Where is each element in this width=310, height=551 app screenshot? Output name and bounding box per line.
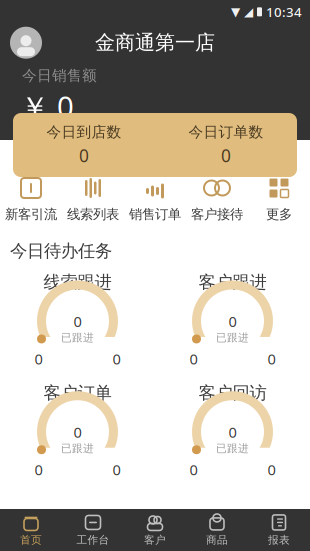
staticText: 今日待办任务: [10, 240, 112, 262]
staticText: 销售订单: [129, 206, 181, 222]
staticText: ￥ 0: [20, 87, 74, 126]
button[interactable]: 新客引流: [0, 172, 62, 226]
staticText: 更多: [266, 206, 292, 222]
staticText: 商品: [206, 533, 228, 546]
button[interactable]: 线索列表: [62, 172, 124, 226]
staticText: 客户接待: [191, 206, 243, 222]
staticText: 新客引流: [5, 206, 57, 222]
staticText: 已跟进: [216, 331, 249, 344]
staticText: 金商通第一店: [95, 30, 215, 55]
button[interactable]: 客户: [124, 509, 186, 550]
staticText: 线索列表: [67, 206, 119, 222]
staticText: 0: [34, 349, 42, 368]
staticText: 首页: [20, 533, 42, 546]
staticText: 0: [221, 144, 231, 167]
staticText: 客户回访: [198, 382, 266, 404]
staticText: 0: [267, 349, 275, 368]
staticText: 0: [73, 422, 81, 442]
button[interactable]: 客户接待: [186, 172, 248, 226]
staticText: 0: [79, 144, 89, 167]
staticText: 0: [189, 460, 197, 479]
staticText: 0: [112, 349, 120, 368]
staticText: 已跟进: [61, 442, 94, 455]
button[interactable]: 商品: [186, 509, 248, 550]
button[interactable]: 客户跟进: [184, 272, 280, 368]
staticText: 0: [228, 422, 236, 442]
button[interactable]: 首页: [0, 509, 62, 550]
staticText: 今日订单数: [188, 123, 263, 141]
button[interactable]: 工作台: [62, 509, 124, 550]
button[interactable]: 客户回访: [184, 382, 280, 479]
button[interactable]: 更多: [248, 172, 310, 226]
staticText: 客户跟进: [198, 272, 266, 293]
staticText: 报表: [268, 533, 290, 546]
staticText: 客户订单: [43, 382, 111, 404]
staticText: 客户: [144, 533, 166, 546]
staticText: 工作台: [76, 533, 109, 546]
staticText: 线索跟进: [43, 272, 111, 293]
button[interactable]: 客户订单: [29, 382, 125, 479]
staticText: 0: [189, 349, 197, 368]
button[interactable]: 报表: [248, 509, 310, 550]
staticText: 0: [267, 460, 275, 479]
staticText: 0: [228, 312, 236, 331]
staticText: 0: [34, 460, 42, 479]
staticText: 今日销售额: [22, 67, 97, 85]
staticText: 已跟进: [61, 331, 94, 344]
staticText: 0: [112, 460, 120, 479]
staticText: 0: [73, 312, 81, 331]
button[interactable]: 销售订单: [124, 172, 186, 226]
staticText: 已跟进: [216, 442, 249, 455]
staticText: ◢: [244, 5, 253, 19]
button[interactable]: 线索跟进: [29, 272, 125, 368]
staticText: ▼: [231, 5, 240, 19]
staticText: 10:34: [266, 3, 302, 21]
staticText: 今日到店数: [46, 123, 121, 141]
button[interactable]: Profile: [8, 25, 44, 61]
